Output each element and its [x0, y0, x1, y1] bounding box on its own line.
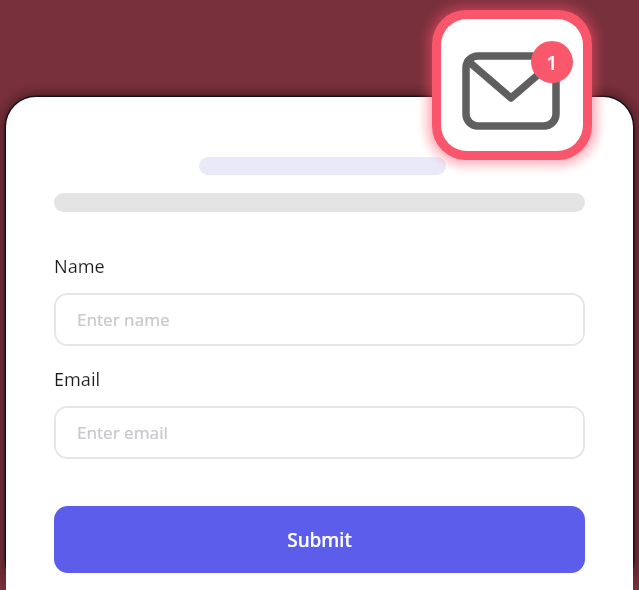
staticText: Enter email	[77, 421, 168, 444]
button[interactable]: Enter name	[54, 293, 585, 346]
staticText: 1	[546, 49, 558, 76]
staticText: Submit	[287, 527, 352, 553]
button[interactable]: Enter email	[54, 406, 585, 459]
staticText: Email	[54, 367, 101, 392]
staticText: Enter name	[77, 308, 170, 331]
staticText: Name	[54, 254, 105, 279]
button[interactable]: Messages, 1 unread	[424, 4, 600, 170]
button[interactable]: Submit	[54, 506, 585, 573]
